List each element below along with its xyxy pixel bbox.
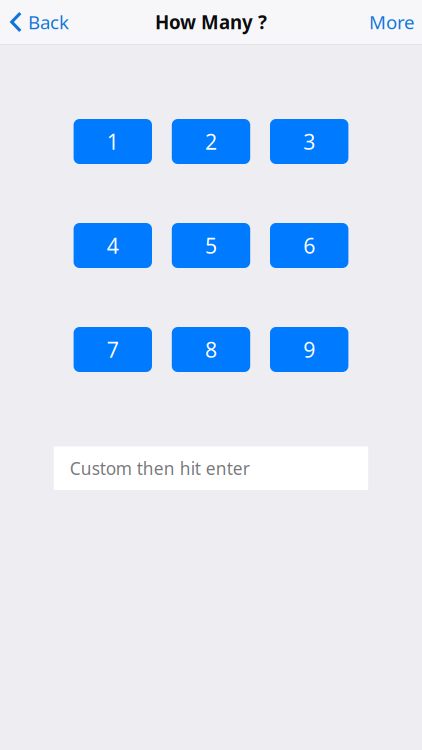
staticText: Custom then hit enter: [70, 457, 250, 480]
staticText: 3: [303, 127, 315, 156]
button[interactable]: 6: [270, 223, 348, 268]
button[interactable]: Back: [0, 0, 81, 44]
staticText: 7: [107, 335, 119, 364]
button[interactable]: 5: [172, 223, 250, 268]
button[interactable]: 7: [74, 327, 152, 372]
button[interactable]: 9: [270, 327, 348, 372]
staticText: 5: [205, 231, 217, 260]
staticText: More: [369, 10, 415, 34]
button[interactable]: 3: [270, 119, 348, 164]
button[interactable]: 8: [172, 327, 250, 372]
button[interactable]: Custom then hit enter: [54, 446, 368, 490]
staticText: 6: [303, 231, 315, 260]
staticText: Back: [28, 10, 69, 34]
button[interactable]: 1: [74, 119, 152, 164]
button[interactable]: More: [357, 0, 422, 44]
staticText: 1: [107, 127, 119, 156]
staticText: 4: [107, 231, 119, 260]
staticText: 8: [205, 335, 217, 364]
button[interactable]: 4: [74, 223, 152, 268]
staticText: 2: [205, 127, 217, 156]
staticText: How Many ?: [155, 10, 267, 34]
staticText: 9: [303, 335, 315, 364]
button[interactable]: 2: [172, 119, 250, 164]
